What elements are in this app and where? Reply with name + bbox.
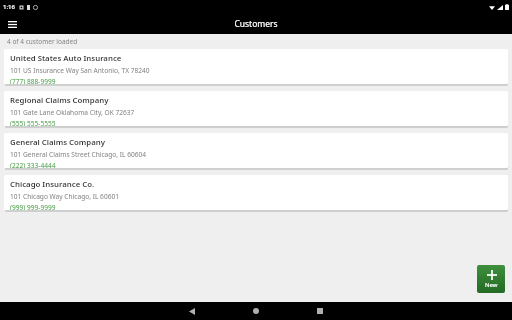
button[interactable]: Regional Claims Company xyxy=(4,91,508,126)
staticText: Customers xyxy=(234,18,278,30)
button[interactable]: Back xyxy=(180,302,204,320)
staticText: 101 Chicago Way Chicago, IL 60601 xyxy=(10,192,119,201)
button[interactable]: Home xyxy=(244,302,268,320)
staticText: New xyxy=(485,281,498,289)
staticText: 101 General Claims Street Chicago, IL 60… xyxy=(10,150,147,159)
staticText: 1:16 xyxy=(3,3,15,11)
staticText: United States Auto Insurance xyxy=(10,53,122,64)
staticText: (777) 888-9999 xyxy=(10,77,56,84)
button[interactable]: United States Auto Insurance xyxy=(4,49,508,84)
staticText: Chicago Insurance Co. xyxy=(10,179,95,190)
button[interactable]: Recent apps xyxy=(308,302,332,320)
staticText: Regional Claims Company xyxy=(10,95,109,106)
button[interactable]: General Claims Company xyxy=(4,133,508,168)
button[interactable]: Open navigation menu xyxy=(4,16,20,32)
staticText: General Claims Company xyxy=(10,137,106,148)
staticText: (222) 333-4444 xyxy=(10,161,56,168)
staticText: 101 Gate Lane Oklahoma City, OK 72637 xyxy=(10,108,135,117)
staticText: 4 of 4 customer loaded xyxy=(7,37,78,46)
staticText: (555) 555-5555 xyxy=(10,119,56,126)
staticText: 101 US Insurance Way San Antonio, TX 782… xyxy=(10,66,150,75)
button[interactable]: Chicago Insurance Co. xyxy=(4,175,508,210)
staticText: (999) 999-9999 xyxy=(10,203,56,210)
button[interactable]: New customer xyxy=(477,265,505,293)
